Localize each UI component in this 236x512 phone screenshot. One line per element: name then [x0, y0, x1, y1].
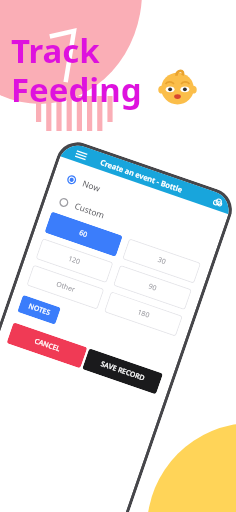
staticText: Feeding — [11, 67, 142, 112]
staticText: Create an event - Bottle — [99, 157, 184, 195]
button[interactable]: 60 — [45, 211, 123, 257]
staticText: Custom — [73, 200, 106, 221]
button[interactable]: CANCEL — [6, 322, 87, 368]
button[interactable]: 90 — [113, 265, 192, 310]
staticText: Track — [11, 28, 100, 73]
staticText: 180 — [136, 307, 152, 321]
staticText: Now — [81, 177, 103, 195]
button[interactable]: SAVE RECORD — [82, 348, 163, 394]
button[interactable]: 120 — [35, 238, 114, 283]
staticText: Other — [55, 279, 77, 295]
staticText: NOTES — [27, 301, 52, 318]
button[interactable]: Open navigation menu — [74, 148, 88, 162]
button[interactable]: 30 — [122, 238, 201, 284]
staticText: 90 — [147, 281, 159, 294]
button[interactable]: Now — [52, 167, 225, 238]
button[interactable]: Other — [26, 264, 104, 310]
staticText: SAVE RECORD — [99, 359, 146, 383]
button[interactable]: NOTES — [17, 295, 61, 325]
button[interactable]: Custom — [44, 189, 217, 261]
staticText: 60 — [78, 228, 89, 240]
staticText: CANCEL — [33, 336, 62, 354]
staticText: 120 — [67, 254, 82, 267]
button[interactable]: Cloud sync — [210, 194, 225, 210]
staticText: 30 — [156, 255, 168, 267]
button[interactable]: 180 — [104, 291, 183, 337]
